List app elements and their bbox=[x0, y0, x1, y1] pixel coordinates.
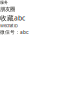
staticText: 服务 bbox=[0, 0, 8, 5]
staticText: Wechat ID bbox=[0, 23, 18, 28]
staticText: 朋友圈 bbox=[0, 6, 15, 12]
staticText: 微信号：abc bbox=[0, 29, 29, 35]
staticText: 收藏abc bbox=[0, 13, 25, 22]
